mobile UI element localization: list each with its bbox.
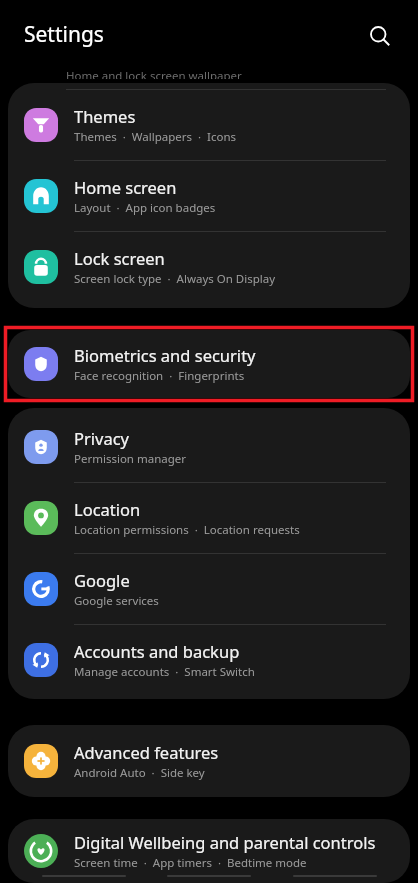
staticText: Themes · Wallpapers · Icons xyxy=(74,129,236,145)
staticText: Location xyxy=(74,498,141,520)
staticText: Screen lock type · Always On Display xyxy=(74,271,276,287)
staticText: Location permissions · Location requests xyxy=(74,522,300,538)
button[interactable]: Accounts and backup xyxy=(8,625,410,695)
button[interactable]: Biometrics and security xyxy=(8,330,410,398)
button[interactable]: Search xyxy=(358,14,402,58)
staticText: Biometrics and security xyxy=(74,344,256,366)
button[interactable]: Home screen xyxy=(8,161,410,231)
button[interactable]: Privacy xyxy=(8,412,410,482)
staticText: Layout · App icon badges xyxy=(74,200,216,216)
staticText: Settings xyxy=(24,20,104,49)
staticText: Google xyxy=(74,569,130,591)
button[interactable]: Location xyxy=(8,483,410,553)
staticText: Permission manager xyxy=(74,451,187,467)
staticText: Advanced features xyxy=(74,741,219,763)
button[interactable]: Google xyxy=(8,554,410,624)
other: Themes xyxy=(24,108,58,142)
other: Digital Wellbeing and parental controls xyxy=(24,834,58,868)
other: Home screen xyxy=(24,179,58,213)
staticText: Screen time · App timers · Bedtime mode xyxy=(74,855,307,871)
staticText: Home screen xyxy=(74,176,177,198)
other: Advanced features xyxy=(24,744,58,778)
button[interactable]: Themes xyxy=(8,90,410,160)
button[interactable]: Lock screen xyxy=(8,232,410,302)
button[interactable]: Digital Wellbeing and parental controls xyxy=(8,819,410,883)
other: Location xyxy=(24,501,58,535)
staticText: Accounts and backup xyxy=(74,640,240,662)
staticText: Google services xyxy=(74,593,159,609)
staticText: Face recognition · Fingerprints xyxy=(74,368,245,384)
other: Google xyxy=(24,572,58,606)
staticText: Home and lock screen wallpaper xyxy=(66,68,242,79)
staticText: Lock screen xyxy=(74,247,165,269)
other: Lock screen xyxy=(24,250,58,284)
other: Biometrics and security xyxy=(24,347,58,381)
staticText: Privacy xyxy=(74,427,130,449)
other: Privacy xyxy=(24,430,58,464)
staticText: Manage accounts · Smart Switch xyxy=(74,664,255,680)
staticText: Android Auto · Side key xyxy=(74,765,205,781)
other: Accounts and backup xyxy=(24,643,58,677)
button[interactable]: Advanced features xyxy=(8,725,410,797)
staticText: Themes xyxy=(74,105,136,127)
staticText: Digital Wellbeing and parental controls xyxy=(74,831,376,853)
